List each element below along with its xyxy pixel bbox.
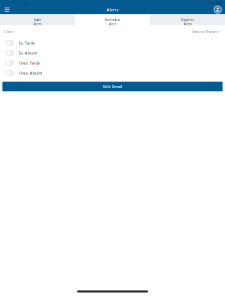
staticText: Unex. Absent xyxy=(19,70,42,75)
button[interactable]: Unex. Absent xyxy=(0,68,225,78)
staticText: Intro to Theatre xyxy=(192,29,218,34)
staticText: Discipline xyxy=(180,18,194,22)
staticText: Class xyxy=(3,29,13,34)
button[interactable]: Account xyxy=(213,6,223,13)
staticText: Attendance xyxy=(104,18,120,22)
button[interactable]: Unex. Tardy xyxy=(0,58,225,68)
staticText: Edit Email xyxy=(103,84,122,89)
button[interactable]: Discipline xyxy=(150,14,225,25)
staticText: Alerts xyxy=(106,7,118,12)
staticText: Unex. Tardy xyxy=(19,60,40,65)
button[interactable]: Intro to Theatre xyxy=(192,29,222,34)
staticText: Ex. Absent xyxy=(19,50,37,55)
staticText: Alerts xyxy=(183,22,191,26)
button[interactable]: Edit Email xyxy=(2,82,223,91)
staticText: Alerts xyxy=(33,22,41,26)
button[interactable]: Grade xyxy=(0,14,75,25)
staticText: 9:41 AM Mon Sep 5 xyxy=(3,1,32,4)
button[interactable]: Ex. Absent xyxy=(0,48,225,58)
button[interactable]: Menu xyxy=(2,5,12,14)
staticText: Grade xyxy=(33,18,41,22)
staticText: Alert xyxy=(109,22,116,26)
staticText: Ex. Tardy xyxy=(19,40,35,45)
button[interactable]: Ex. Tardy xyxy=(0,38,225,48)
staticText: ⌄ xyxy=(220,30,222,33)
button[interactable]: Attendance xyxy=(75,14,150,25)
